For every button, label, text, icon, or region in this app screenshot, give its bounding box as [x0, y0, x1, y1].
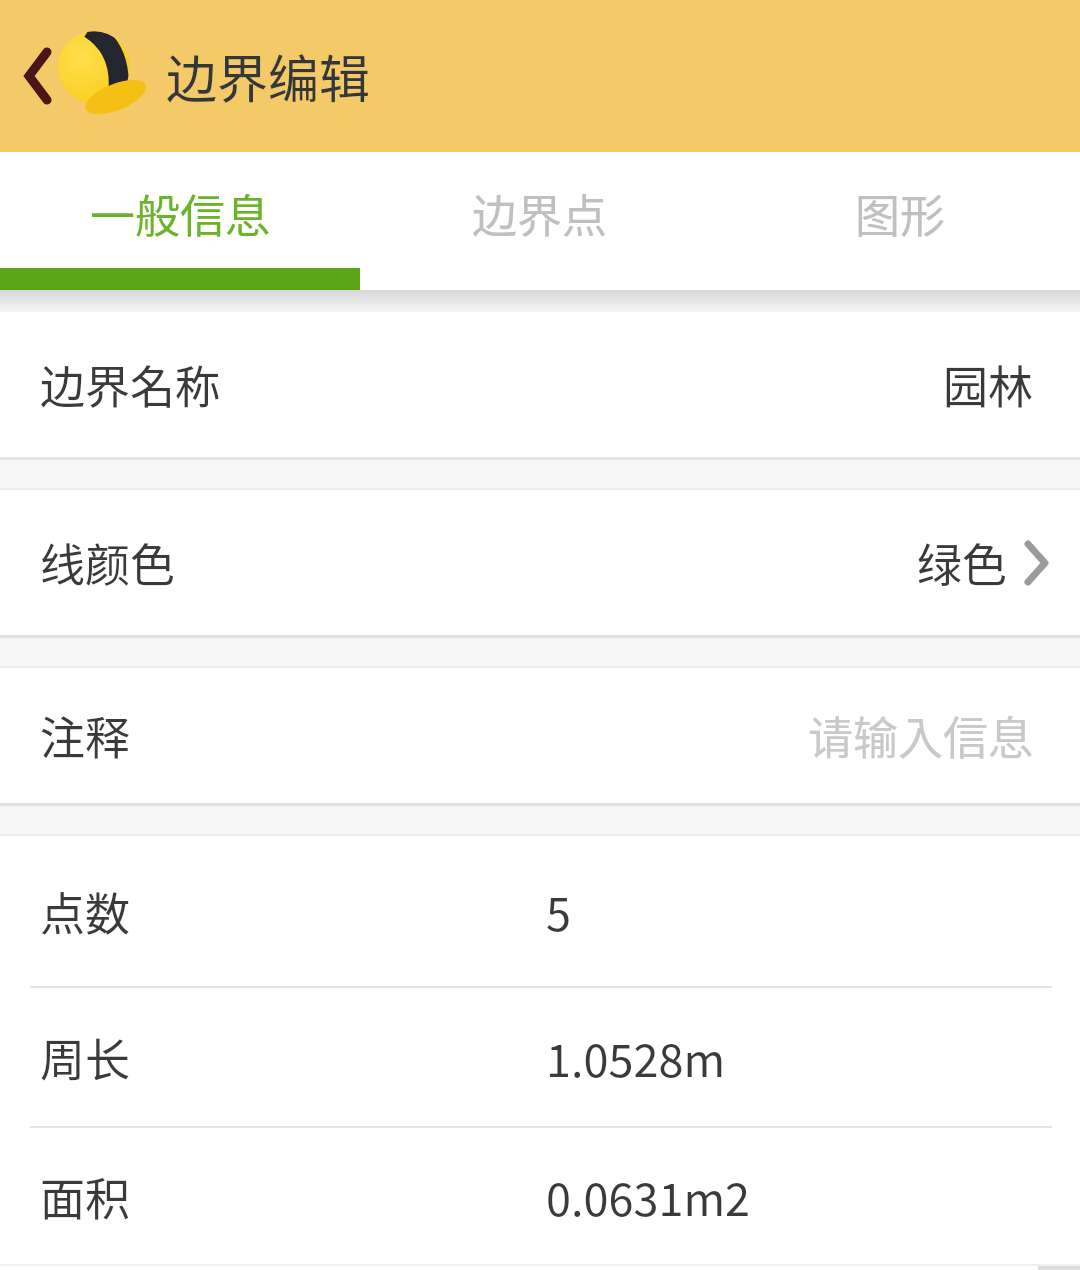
button[interactable]: 注释: [0, 668, 1080, 803]
button[interactable]: 一般信息: [0, 152, 360, 274]
button[interactable]: 面积: [0, 1128, 1080, 1264]
button[interactable]: [0, 0, 50, 152]
button[interactable]: 边界名称: [0, 312, 1080, 457]
staticText: 线颜色: [40, 530, 176, 595]
staticText: 5: [546, 879, 571, 944]
staticText: 绿色: [917, 530, 1008, 595]
button[interactable]: 周长: [0, 988, 1080, 1126]
staticText: 0.0631m2: [546, 1164, 751, 1229]
staticText: 一般信息: [90, 181, 271, 246]
button[interactable]: 图形: [720, 152, 1080, 274]
staticText: 园林: [943, 352, 1034, 417]
staticText: 周长: [40, 1025, 131, 1090]
staticText: 请输入信息: [808, 703, 1034, 768]
staticText: 边界点: [472, 181, 608, 246]
button[interactable]: 线颜色: [0, 490, 1080, 635]
button[interactable]: 点数: [0, 836, 1080, 986]
staticText: 边界名称: [40, 352, 221, 417]
staticText: 边界编辑: [166, 39, 371, 113]
staticText: 面积: [40, 1164, 131, 1229]
staticText: 图形: [855, 181, 946, 246]
button[interactable]: 边界点: [360, 152, 720, 274]
staticText: 注释: [40, 703, 131, 768]
staticText: 1.0528m: [546, 1025, 726, 1090]
staticText: 点数: [40, 879, 131, 944]
